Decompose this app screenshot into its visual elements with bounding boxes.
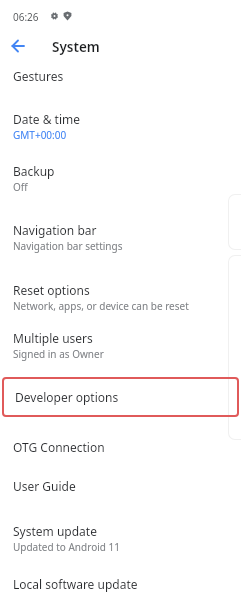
button[interactable]: OTG Connection [0, 427, 241, 467]
button[interactable]: Local software update [0, 564, 241, 600]
button[interactable]: Backup [0, 150, 241, 206]
staticText: Local software update [13, 576, 138, 592]
staticText: Developer options [15, 389, 119, 405]
button[interactable] [11, 39, 25, 53]
staticText: Updated to Android 11 [13, 540, 120, 554]
staticText: 06:26 [13, 10, 39, 24]
staticText: Off [13, 180, 28, 194]
button[interactable]: System update [0, 510, 241, 566]
staticText: Signed in as Owner [13, 347, 104, 361]
button[interactable]: Reset options [0, 269, 241, 325]
button[interactable]: Developer options [2, 377, 239, 417]
button[interactable]: Gestures [0, 56, 241, 96]
staticText: GMT+00:00 [13, 128, 67, 142]
button[interactable]: Multiple users [0, 317, 241, 373]
staticText: Backup [13, 163, 55, 179]
staticText: Gestures [13, 68, 64, 84]
staticText: Reset options [13, 282, 90, 298]
staticText: Network, apps, or device can be reset [13, 299, 189, 313]
staticText: System update [13, 523, 97, 539]
staticText: System [52, 38, 100, 56]
button[interactable]: User Guide [0, 466, 241, 506]
staticText: Navigation bar [13, 222, 97, 238]
staticText: OTG Connection [13, 439, 105, 455]
button[interactable]: Date & time [0, 98, 241, 154]
staticText: Navigation bar settings [13, 239, 123, 253]
staticText: Multiple users [13, 330, 93, 346]
staticText: User Guide [13, 478, 76, 494]
button[interactable]: Navigation bar [0, 209, 241, 265]
staticText: Date & time [13, 111, 81, 127]
